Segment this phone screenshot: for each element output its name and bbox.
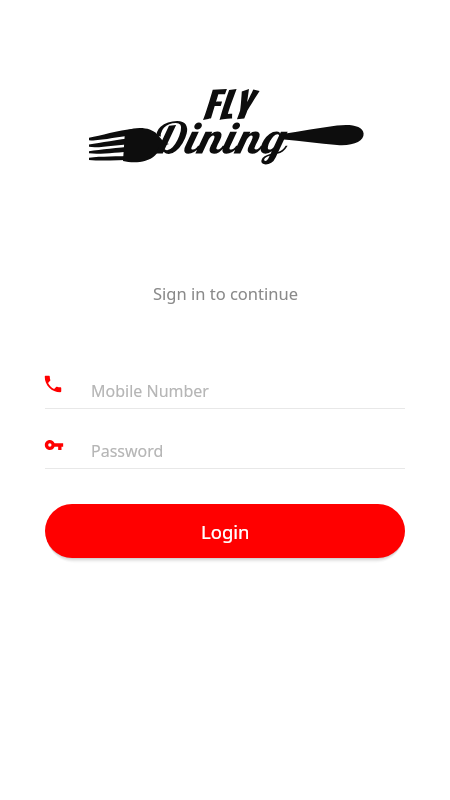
staticText: Password [91,440,164,462]
button[interactable]: Password [45,434,405,470]
staticText: Mobile Number [91,380,209,402]
staticText: Login [201,519,250,544]
button[interactable]: Login [45,504,405,558]
button[interactable]: Mobile Number [45,374,405,410]
staticText: Sign in to continue [153,282,298,304]
